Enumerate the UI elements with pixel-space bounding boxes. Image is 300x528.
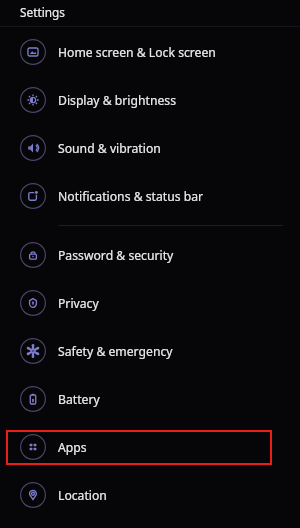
staticText: Password & security xyxy=(58,247,174,264)
button[interactable]: Notifications & status bar xyxy=(0,172,300,220)
button[interactable]: Location xyxy=(0,471,300,519)
button[interactable]: Home screen & Lock screen xyxy=(0,28,300,76)
staticText: Settings xyxy=(20,4,65,20)
staticText: Sound & vibration xyxy=(58,140,161,157)
button[interactable]: Apps xyxy=(0,423,300,471)
staticText: Display & brightness xyxy=(58,92,177,109)
button[interactable]: Safety & emergency xyxy=(0,327,300,375)
staticText: Notifications & status bar xyxy=(58,188,204,205)
staticText: Location xyxy=(58,487,107,504)
button[interactable]: Privacy xyxy=(0,279,300,327)
staticText: Safety & emergency xyxy=(58,343,173,360)
button[interactable]: Battery xyxy=(0,375,300,423)
button[interactable]: Display & brightness xyxy=(0,76,300,124)
staticText: Apps xyxy=(58,439,87,456)
staticText: Home screen & Lock screen xyxy=(58,44,216,61)
button[interactable]: Password & security xyxy=(0,231,300,279)
staticText: Privacy xyxy=(58,295,99,312)
button[interactable]: Sound & vibration xyxy=(0,124,300,172)
staticText: Battery xyxy=(58,391,100,408)
